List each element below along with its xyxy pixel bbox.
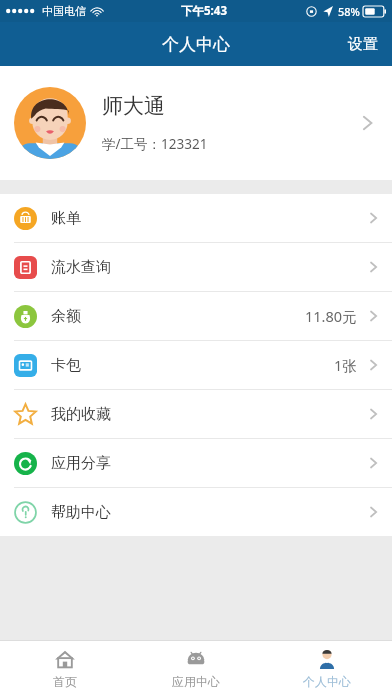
staticText: 中国电信 <box>42 4 86 18</box>
staticText: 卡包 <box>51 356 81 375</box>
staticText: 账单 <box>51 209 81 228</box>
button[interactable]: 应用中心 <box>130 641 261 696</box>
staticText: 58% <box>338 4 360 19</box>
staticText: 个人中心 <box>303 674 351 689</box>
staticText: 我的收藏 <box>51 405 111 424</box>
button[interactable]: 账单 <box>0 194 392 242</box>
staticText: 师大通 <box>102 93 165 119</box>
staticText: 1张 <box>334 355 357 375</box>
button[interactable]: 流水查询 <box>0 243 392 291</box>
staticText: 帮助中心 <box>51 503 111 522</box>
staticText: 设置 <box>348 35 378 54</box>
button[interactable]: 首页 <box>0 641 130 696</box>
staticText: 下午5:43 <box>181 3 227 19</box>
button[interactable]: 我的收藏 <box>0 390 392 438</box>
staticText: 首页 <box>53 674 77 689</box>
button[interactable]: 师大通 <box>0 66 392 180</box>
button[interactable]: 个人中心 <box>261 641 392 696</box>
staticText: 学/工号：123321 <box>102 135 208 153</box>
button[interactable]: 帮助中心 <box>0 488 392 536</box>
button[interactable]: 余额 <box>0 292 392 340</box>
staticText: 流水查询 <box>51 258 111 277</box>
button[interactable]: 设置 <box>334 22 392 66</box>
staticText: 余额 <box>51 307 81 326</box>
staticText: 11.80元 <box>305 306 357 326</box>
button[interactable]: 卡包 <box>0 341 392 389</box>
staticText: 个人中心 <box>162 34 230 55</box>
button[interactable]: 应用分享 <box>0 439 392 487</box>
staticText: 应用分享 <box>51 454 111 473</box>
staticText: 应用中心 <box>172 674 220 689</box>
